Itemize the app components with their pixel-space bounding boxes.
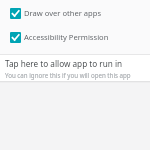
button[interactable]: Draw over other apps [0,2,150,24]
staticText: Accessibility Permission [24,32,109,42]
button[interactable]: Accessibility Permission [0,24,150,50]
staticText: You can ignore this if you will open thi… [5,71,146,79]
button[interactable]: Allow app to run in background [0,55,150,81]
staticText: Tap here to allow app to run in backgrou… [5,58,146,69]
staticText: Draw over other apps [24,8,102,18]
